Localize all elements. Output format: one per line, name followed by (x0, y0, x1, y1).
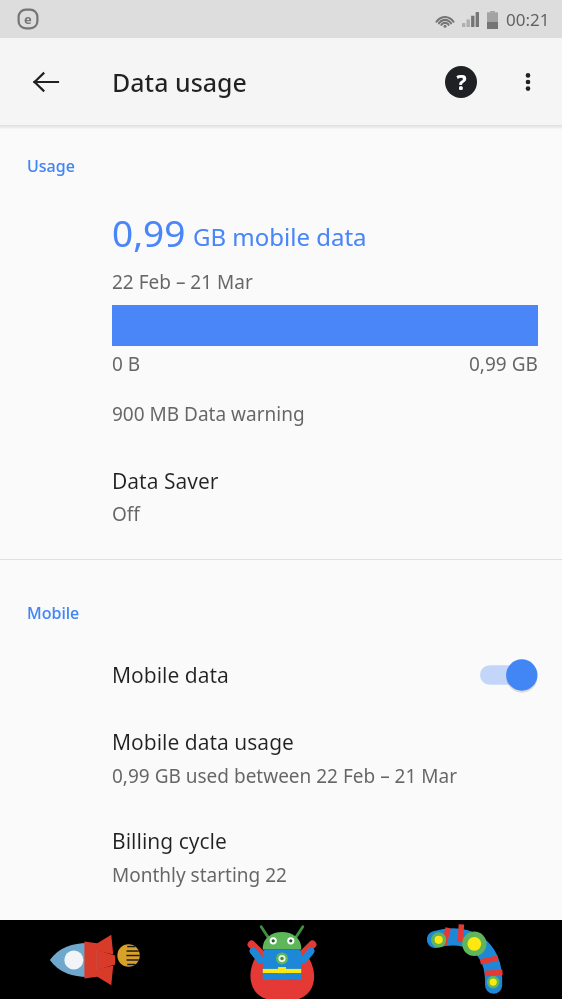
staticText: Usage (27, 155, 75, 177)
staticText: Monthly starting 22 (112, 862, 287, 888)
button[interactable]: Data Saver (0, 465, 562, 537)
staticText: 00:21 (506, 8, 550, 31)
button[interactable]: Back (22, 58, 70, 106)
button[interactable]: Mobile data usage (0, 728, 562, 789)
button[interactable]: More options (505, 59, 551, 105)
staticText: 0,99 GB used between 22 Feb – 21 Mar (112, 763, 457, 789)
staticText: 900 MB Data warning (112, 401, 305, 427)
staticText: Mobile (27, 602, 80, 624)
staticText: 0,99 GB (469, 351, 538, 377)
button[interactable]: Boomerang (375, 920, 562, 999)
staticText: ? (456, 68, 467, 97)
staticText: 0 B (112, 351, 141, 377)
staticText: GB mobile data (193, 220, 367, 253)
staticText: Billing cycle (112, 827, 227, 856)
button[interactable]: Rocket (0, 920, 188, 999)
staticText: Data Saver (112, 467, 219, 496)
staticText: Data usage (112, 65, 247, 99)
staticText: 0,99 (112, 207, 186, 257)
staticText: 22 Feb – 21 Mar (112, 269, 253, 295)
staticText: Off (112, 501, 140, 527)
button[interactable]: Android superhero (188, 920, 375, 999)
staticText: Mobile data usage (112, 728, 294, 757)
staticText: Mobile data (112, 661, 480, 690)
button[interactable]: Mobile data (0, 658, 562, 692)
button[interactable]: Billing cycle (0, 827, 562, 888)
staticText: e (24, 10, 32, 28)
button[interactable]: Help (437, 58, 485, 106)
